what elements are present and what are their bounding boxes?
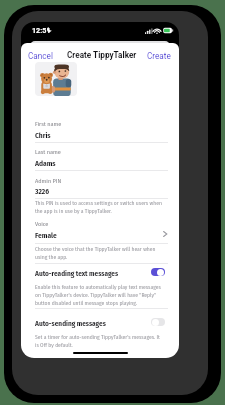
staticText: Voice	[35, 220, 49, 227]
staticText: Admin PIN	[35, 177, 62, 184]
staticText: This PIN is used to access settings or s…	[35, 200, 162, 215]
staticText: Auto-sending messages	[35, 319, 106, 328]
staticText: Create	[147, 51, 171, 61]
staticText: First name	[35, 120, 62, 127]
button[interactable]	[21, 174, 179, 201]
staticText: Chris	[35, 131, 51, 140]
button[interactable]	[21, 145, 179, 173]
staticText: Cancel	[28, 51, 53, 61]
staticText: Enable this feature to automatically pla…	[35, 284, 162, 307]
staticText: Auto-reading text messages	[35, 269, 119, 278]
staticText: Set a timer for auto-sending TippyTalker…	[35, 334, 162, 349]
staticText: Create TippyTalker	[67, 50, 137, 60]
staticText: Female	[35, 231, 57, 240]
staticText: 12:51	[32, 26, 51, 34]
staticText: 3226	[35, 187, 50, 196]
button[interactable]: Create	[142, 47, 176, 65]
button[interactable]	[21, 265, 179, 281]
button[interactable]: Cancel	[23, 47, 58, 65]
staticText: Last name	[35, 148, 61, 155]
button[interactable]: Change avatar photo	[35, 62, 77, 96]
button[interactable]	[21, 315, 179, 331]
staticText: Adams	[35, 159, 56, 168]
button[interactable]	[21, 217, 179, 246]
staticText: Choose the voice that the TippyTalker wi…	[35, 246, 162, 261]
button[interactable]	[21, 117, 179, 145]
